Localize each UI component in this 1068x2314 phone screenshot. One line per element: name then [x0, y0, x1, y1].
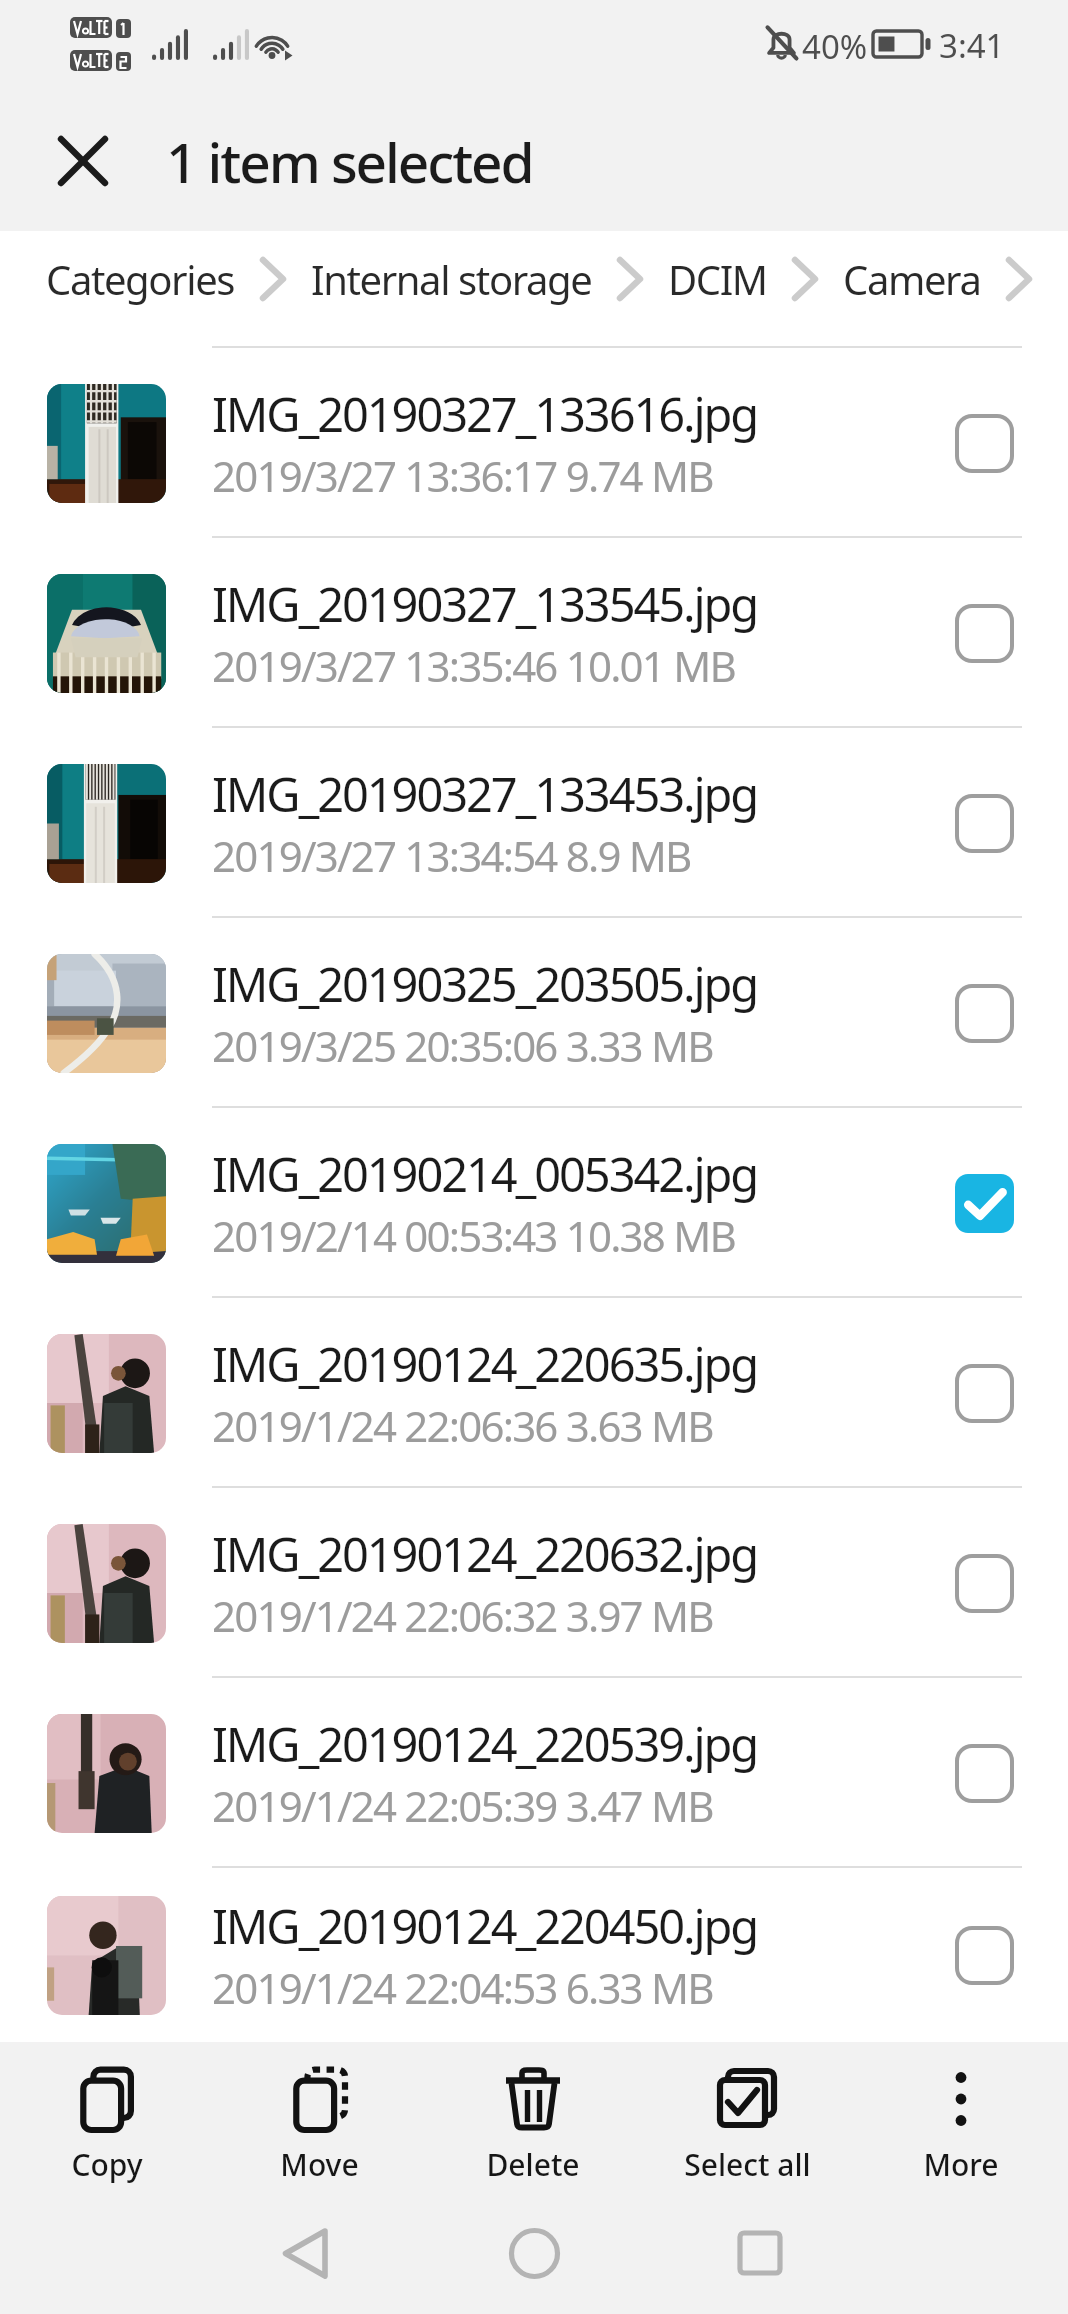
button[interactable]: Select IMG_20190327_133545.jpg: [928, 574, 1041, 693]
staticText: 2019/3/27 13:36:17 9.74 MB: [212, 447, 713, 504]
staticText: 3:41: [939, 23, 1005, 68]
button[interactable]: IMG_20190124_220632.jpg: [0, 1488, 1068, 1678]
button[interactable]: Select IMG_20190214_005342.jpg: [928, 1144, 1041, 1263]
staticText: Select all: [684, 2144, 811, 2185]
button[interactable]: Camera: [843, 252, 981, 306]
button[interactable]: Copy: [0, 2042, 213, 2194]
staticText: 40%: [802, 24, 868, 69]
button[interactable]: Close selection: [30, 108, 136, 214]
staticText: Categories: [46, 252, 235, 306]
button[interactable]: IMG_20190124_220539.jpg: [0, 1678, 1068, 1868]
staticText: IMG_20190327_133545.jpg: [212, 572, 758, 636]
button[interactable]: Select all: [640, 2042, 854, 2194]
button[interactable]: IMG_20190327_133616.jpg: [0, 348, 1068, 538]
button[interactable]: IMG_20190214_005342.jpg: [0, 1108, 1068, 1298]
staticText: Camera: [843, 252, 981, 306]
staticText: Move: [280, 2144, 359, 2185]
button[interactable]: IMG_20190124_220450.jpg: [0, 1868, 1068, 2042]
staticText: IMG_20190124_220539.jpg: [212, 1712, 758, 1776]
button[interactable]: Back: [260, 2208, 350, 2298]
staticText: Internal storage: [311, 252, 592, 306]
button[interactable]: Move: [213, 2042, 426, 2194]
staticText: IMG_20190124_220635.jpg: [212, 1332, 758, 1396]
button[interactable]: Recents: [715, 2208, 805, 2298]
button[interactable]: Categories: [46, 252, 235, 306]
button[interactable]: Select IMG_20190124_220450.jpg: [928, 1896, 1041, 2015]
button[interactable]: Select IMG_20190124_220632.jpg: [928, 1524, 1041, 1643]
staticText: 1 item selected: [166, 124, 533, 199]
staticText: IMG_20190327_133616.jpg: [212, 382, 758, 446]
staticText: 2019/3/27 13:35:46 10.01 MB: [212, 637, 735, 694]
staticText: IMG_20190327_133453.jpg: [212, 762, 758, 826]
staticText: IMG_20190124_220450.jpg: [212, 1894, 758, 1958]
staticText: IMG_20190214_005342.jpg: [212, 1142, 758, 1206]
button[interactable]: Select IMG_20190124_220539.jpg: [928, 1714, 1041, 1833]
button[interactable]: IMG_20190327_133453.jpg: [0, 728, 1068, 918]
button[interactable]: Select IMG_20190327_133453.jpg: [928, 764, 1041, 883]
button[interactable]: DCIM: [668, 252, 767, 306]
button[interactable]: Delete: [426, 2042, 640, 2194]
staticText: 2019/1/24 22:06:32 3.97 MB: [212, 1587, 713, 1644]
staticText: IMG_20190325_203505.jpg: [212, 952, 758, 1016]
button[interactable]: IMG_20190124_220635.jpg: [0, 1298, 1068, 1488]
button[interactable]: Select IMG_20190327_133616.jpg: [928, 384, 1041, 503]
staticText: IMG_20190124_220632.jpg: [212, 1522, 758, 1586]
staticText: DCIM: [668, 252, 767, 306]
button[interactable]: IMG_20190327_133545.jpg: [0, 538, 1068, 728]
staticText: Copy: [71, 2144, 143, 2185]
button[interactable]: More: [854, 2042, 1068, 2194]
staticText: Delete: [486, 2144, 580, 2185]
staticText: 2019/3/27 13:34:54 8.9 MB: [212, 827, 691, 884]
staticText: 2019/1/24 22:04:53 6.33 MB: [212, 1959, 713, 2016]
button[interactable]: Home: [489, 2208, 579, 2298]
button[interactable]: Select IMG_20190124_220635.jpg: [928, 1334, 1041, 1453]
staticText: 2019/1/24 22:05:39 3.47 MB: [212, 1777, 713, 1834]
button[interactable]: IMG_20190325_203505.jpg: [0, 918, 1068, 1108]
staticText: 2019/1/24 22:06:36 3.63 MB: [212, 1397, 713, 1454]
staticText: More: [923, 2144, 999, 2185]
button[interactable]: Select IMG_20190325_203505.jpg: [928, 954, 1041, 1073]
button[interactable]: Internal storage: [311, 252, 592, 306]
staticText: 2019/2/14 00:53:43 10.38 MB: [212, 1207, 735, 1264]
staticText: 2019/3/25 20:35:06 3.33 MB: [212, 1017, 713, 1074]
